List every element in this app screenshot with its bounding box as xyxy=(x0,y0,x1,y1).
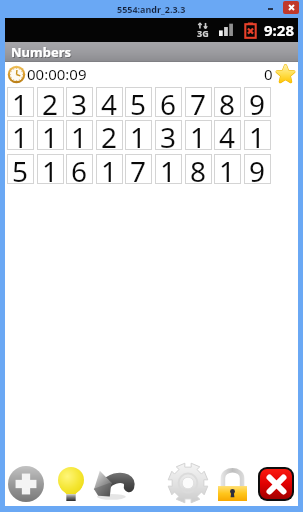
staticText: 1 xyxy=(71,118,88,148)
button[interactable]: 5 xyxy=(125,87,152,117)
button[interactable]: Quit xyxy=(258,467,294,501)
staticText: 9 xyxy=(249,85,266,115)
button[interactable]: 7 xyxy=(185,87,212,117)
staticText: 1 xyxy=(130,118,147,148)
staticText: 1 xyxy=(160,152,177,182)
staticText: 1 xyxy=(101,152,118,182)
button[interactable]: 3 xyxy=(155,120,182,150)
staticText: 5 xyxy=(12,152,29,182)
button[interactable]: 9 xyxy=(244,154,271,184)
button[interactable]: 1 xyxy=(185,120,212,150)
staticText: Numbers xyxy=(12,44,73,62)
button[interactable]: 1 xyxy=(37,154,64,184)
button[interactable]: 2 xyxy=(37,87,64,117)
button[interactable]: 1 xyxy=(7,120,34,150)
button[interactable]: Settings xyxy=(167,463,209,503)
button[interactable]: 8 xyxy=(185,154,212,184)
staticText: 1 xyxy=(12,118,29,148)
button[interactable]: Minimize xyxy=(263,2,277,14)
staticText: 4 xyxy=(101,85,118,115)
button[interactable]: 6 xyxy=(155,87,182,117)
staticText: 1 xyxy=(42,152,59,182)
button[interactable]: 1 xyxy=(155,154,182,184)
staticText: 5554:andr_2.3.3 xyxy=(117,3,186,15)
button[interactable]: Lock xyxy=(218,467,247,501)
button[interactable]: 3 xyxy=(66,87,93,117)
button[interactable]: 4 xyxy=(214,120,241,150)
button[interactable]: Undo xyxy=(93,469,133,498)
staticText: 2 xyxy=(101,118,118,148)
button[interactable]: 2 xyxy=(96,120,123,150)
staticText: 6 xyxy=(71,152,88,182)
button[interactable]: 1 xyxy=(7,87,34,117)
button[interactable]: 1 xyxy=(66,120,93,150)
staticText: 3 xyxy=(71,85,88,115)
staticText: 0 xyxy=(264,64,273,84)
staticText: 3G xyxy=(197,27,209,39)
staticText: 00:00:09 xyxy=(27,64,87,84)
button[interactable]: Hint xyxy=(58,467,84,501)
button[interactable]: 7 xyxy=(125,154,152,184)
staticText: 4 xyxy=(219,118,236,148)
staticText: 3 xyxy=(160,118,177,148)
staticText: 1 xyxy=(190,118,207,148)
button[interactable]: 1 xyxy=(96,154,123,184)
staticText: 7 xyxy=(190,85,207,115)
button[interactable]: 8 xyxy=(214,87,241,117)
button[interactable]: 1 xyxy=(214,154,241,184)
button[interactable]: 5 xyxy=(7,154,34,184)
staticText: 7 xyxy=(130,152,147,182)
staticText: 6 xyxy=(160,85,177,115)
button[interactable]: Close xyxy=(283,1,299,14)
staticText: 9:28 xyxy=(264,20,294,40)
staticText: 1 xyxy=(219,152,236,182)
staticText: Numbers xyxy=(11,43,72,61)
staticText: 5 xyxy=(130,85,147,115)
button[interactable]: 1 xyxy=(125,120,152,150)
button[interactable]: 9 xyxy=(244,87,271,117)
staticText: 9 xyxy=(249,152,266,182)
staticText: 8 xyxy=(190,152,207,182)
staticText: 1 xyxy=(42,118,59,148)
button[interactable]: Add xyxy=(8,466,44,502)
staticText: 1 xyxy=(12,85,29,115)
staticText: 8 xyxy=(219,85,236,115)
button[interactable]: 1 xyxy=(244,120,271,150)
button[interactable]: 4 xyxy=(96,87,123,117)
button[interactable]: 1 xyxy=(37,120,64,150)
button[interactable]: 6 xyxy=(66,154,93,184)
staticText: 1 xyxy=(249,118,266,148)
staticText: 2 xyxy=(42,85,59,115)
